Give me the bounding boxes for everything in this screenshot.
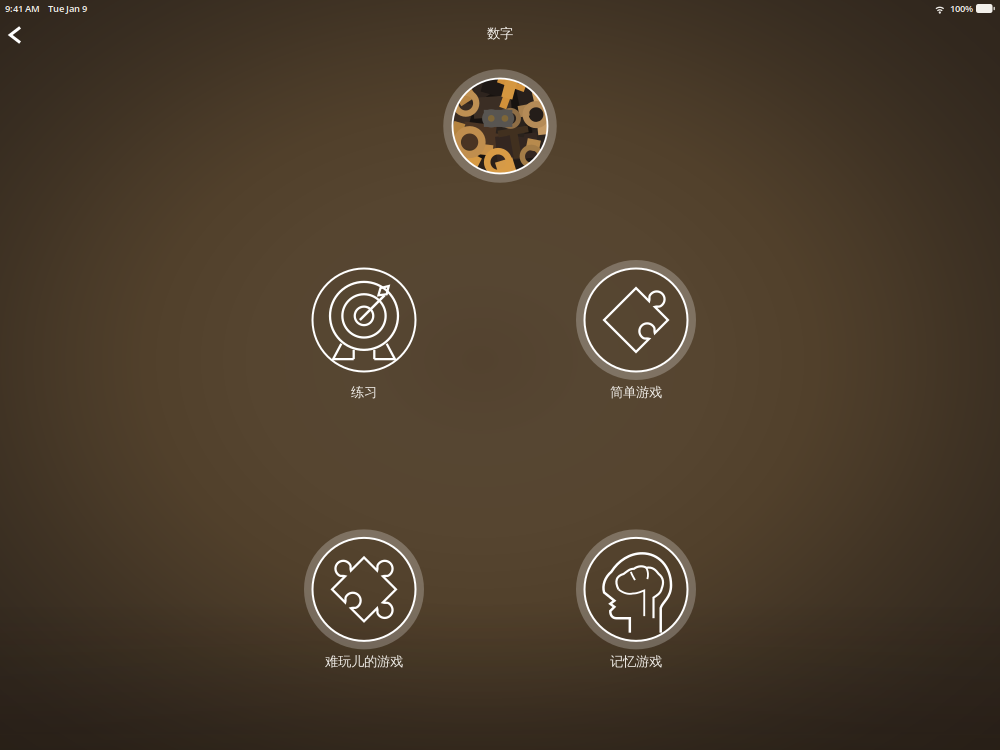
button[interactable]: 难玩儿的游戏	[254, 527, 474, 670]
staticText: 难玩儿的游戏	[325, 653, 403, 670]
staticText: Tue Jan 9	[48, 2, 87, 15]
staticText: 练习	[351, 384, 377, 400]
staticText: 简单游戏	[610, 384, 662, 400]
staticText: 数字	[487, 25, 513, 42]
button[interactable]: 简单游戏	[526, 258, 746, 400]
staticText: 9:41 AM	[5, 2, 40, 15]
staticText: 记忆游戏	[610, 653, 662, 670]
button[interactable]: 记忆游戏	[526, 527, 746, 670]
staticText: 100%	[950, 2, 973, 15]
button[interactable]: 练习	[254, 258, 474, 400]
button[interactable]: Back	[0, 16, 40, 54]
